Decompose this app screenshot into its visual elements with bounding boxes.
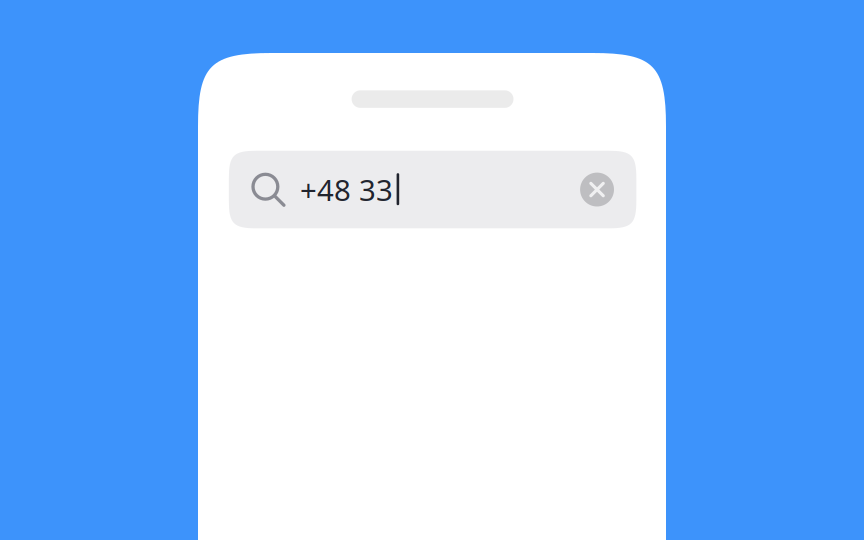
button[interactable]: Clear text [580, 173, 614, 206]
staticText: +48 33 [300, 170, 393, 209]
button[interactable]: +48 33 [229, 151, 636, 228]
